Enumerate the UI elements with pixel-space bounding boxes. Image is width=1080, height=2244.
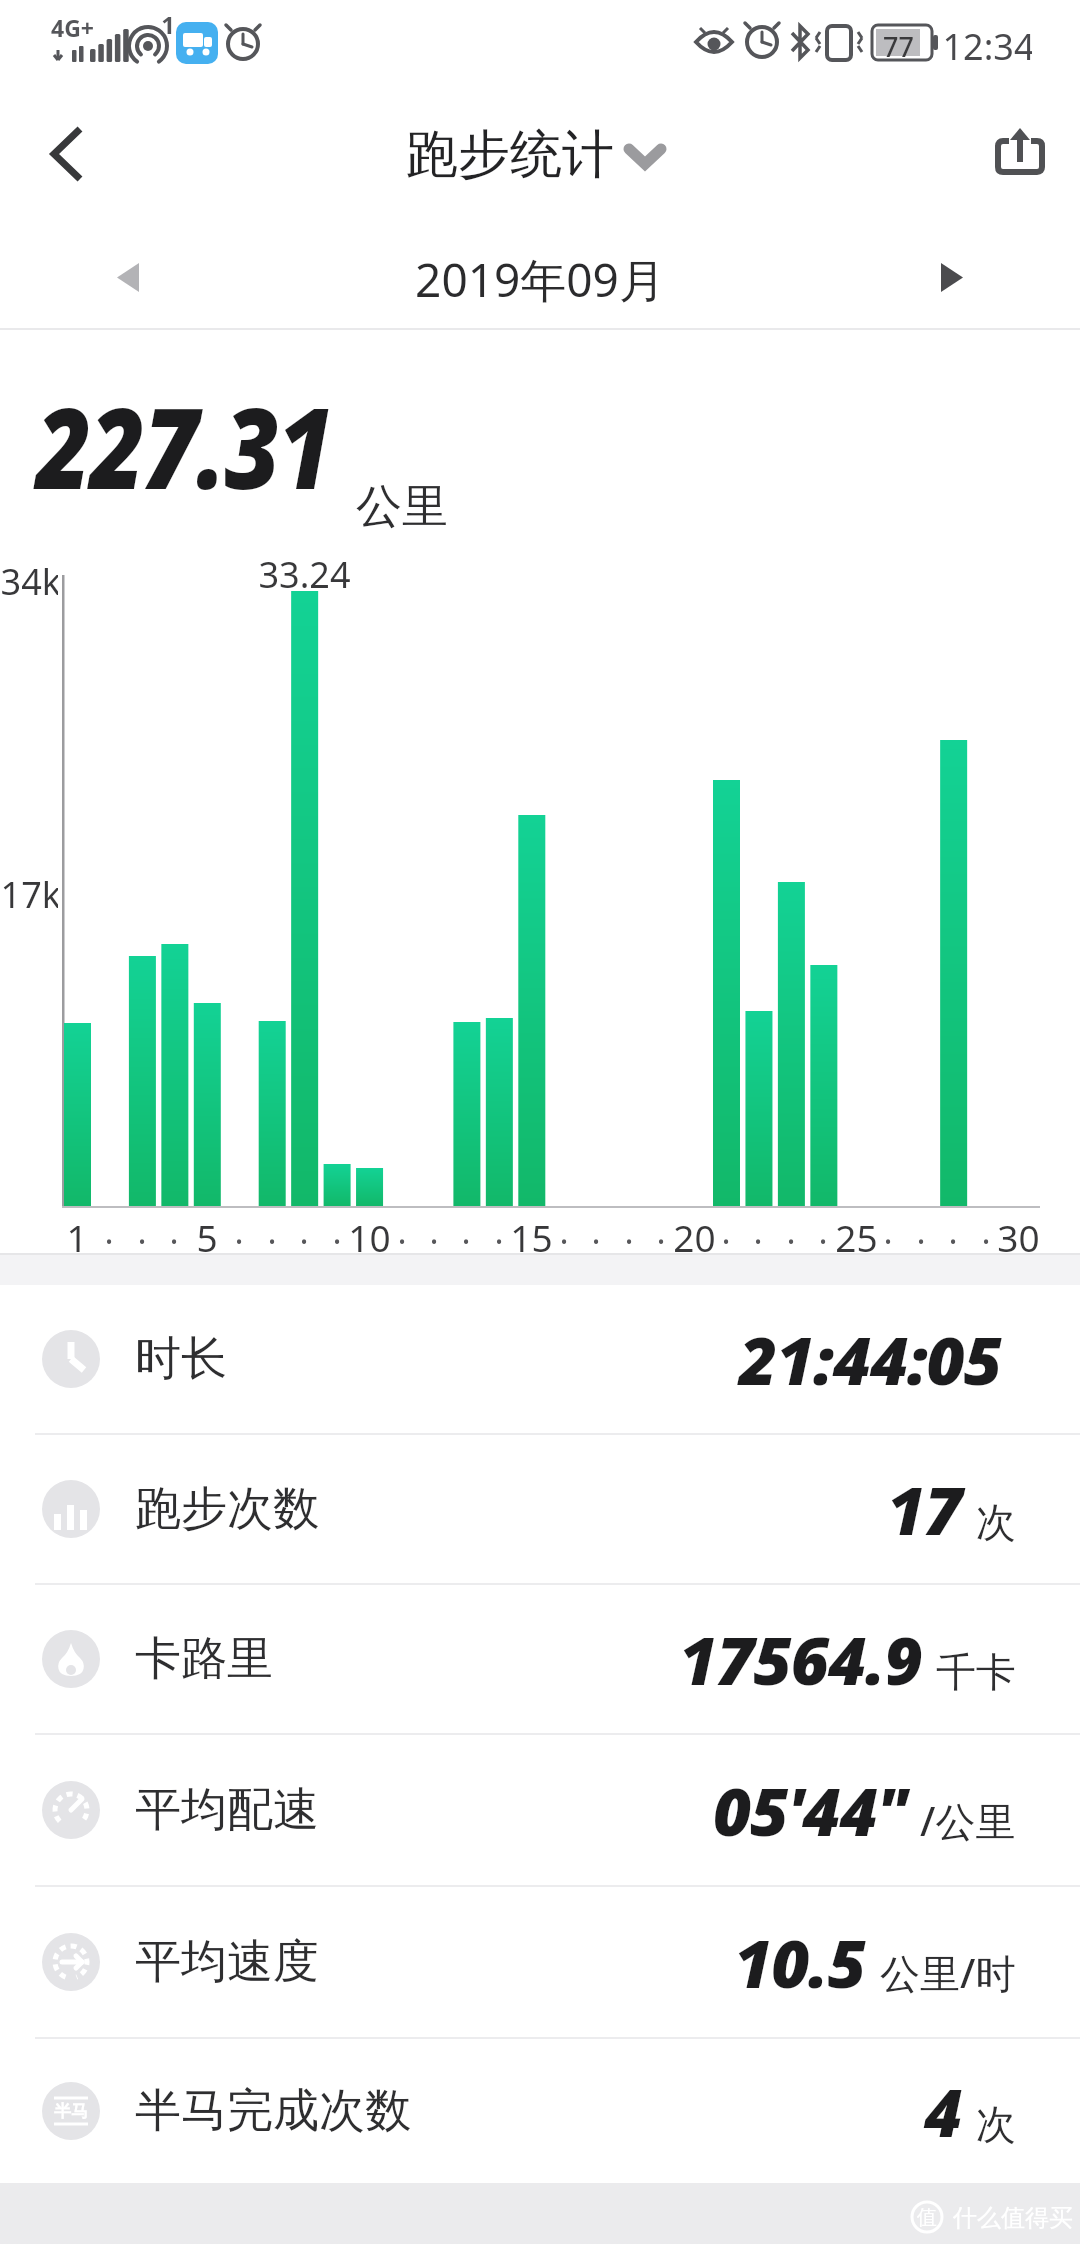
staticText: 17564.9: [679, 1614, 922, 1704]
button[interactable]: [390, 115, 670, 195]
staticText: .: [461, 1208, 471, 1252]
staticText: 半马完成次数: [135, 2082, 411, 2140]
button[interactable]: 平均配速: [0, 1735, 1080, 1885]
staticText: 77: [883, 28, 914, 58]
button[interactable]: 平均速度: [0, 1887, 1080, 2037]
staticText: .: [721, 1208, 731, 1252]
staticText: 1: [161, 8, 175, 34]
staticText: .: [656, 1208, 666, 1252]
staticText: 公里: [356, 478, 448, 530]
staticText: 05'44": [713, 1765, 906, 1855]
staticText: .: [916, 1208, 926, 1252]
staticText: .: [883, 1208, 893, 1252]
staticText: .: [169, 1208, 179, 1252]
staticText: .: [786, 1208, 796, 1252]
staticText: 21:44:05: [739, 1314, 1002, 1404]
staticText: 半马: [54, 2101, 88, 2122]
staticText: .: [753, 1208, 763, 1252]
staticText: 10.5: [734, 1917, 866, 2007]
staticText: 12:34: [942, 22, 1032, 64]
staticText: .: [397, 1208, 407, 1252]
button[interactable]: [910, 235, 1000, 320]
staticText: 15: [510, 1212, 553, 1256]
staticText: 25: [835, 1212, 878, 1256]
staticText: .: [559, 1208, 569, 1252]
staticText: .: [429, 1208, 439, 1252]
staticText: .: [948, 1208, 958, 1252]
staticText: .: [981, 1208, 991, 1252]
button[interactable]: 卡路里: [0, 1585, 1080, 1733]
staticText: 33.24: [258, 550, 351, 592]
staticText: .: [234, 1208, 244, 1252]
staticText: 千卡: [936, 1647, 1016, 1697]
staticText: /公里: [920, 1793, 1016, 1848]
staticText: .: [267, 1208, 277, 1252]
button[interactable]: [85, 235, 175, 320]
staticText: .: [591, 1208, 601, 1252]
button[interactable]: [970, 105, 1070, 200]
staticText: 4: [924, 2066, 962, 2156]
staticText: 17: [887, 1464, 962, 1554]
staticText: 17k: [0, 870, 58, 910]
staticText: .: [332, 1208, 342, 1252]
staticText: 次: [976, 2099, 1016, 2149]
staticText: 5: [196, 1212, 218, 1256]
staticText: .: [818, 1208, 828, 1252]
staticText: 227.31: [36, 370, 332, 521]
button[interactable]: 跑步次数: [0, 1435, 1080, 1583]
staticText: 30: [997, 1212, 1040, 1256]
staticText: 10: [348, 1212, 391, 1256]
staticText: 时长: [135, 1330, 227, 1388]
staticText: .: [624, 1208, 634, 1252]
staticText: .: [104, 1208, 114, 1252]
staticText: 公里/时: [880, 1945, 1016, 2000]
staticText: 值: [917, 2205, 937, 2229]
staticText: 跑步统计: [406, 122, 614, 188]
button[interactable]: 时长: [0, 1285, 1080, 1433]
staticText: 4G+: [51, 12, 94, 38]
button[interactable]: [20, 105, 110, 205]
staticText: 平均配速: [135, 1781, 319, 1839]
staticText: 34k: [0, 557, 58, 597]
staticText: 平均速度: [135, 1933, 319, 1991]
staticText: .: [299, 1208, 309, 1252]
staticText: 1: [66, 1212, 88, 1256]
staticText: 什么值得买: [953, 2203, 1073, 2231]
staticText: .: [137, 1208, 147, 1252]
staticText: .: [494, 1208, 504, 1252]
staticText: 次: [976, 1497, 1016, 1547]
staticText: 跑步次数: [135, 1480, 319, 1538]
staticText: 卡路里: [135, 1630, 273, 1688]
staticText: 20: [673, 1212, 716, 1256]
button[interactable]: 半马: [0, 2039, 1080, 2183]
staticText: 2019年09月: [415, 248, 665, 308]
